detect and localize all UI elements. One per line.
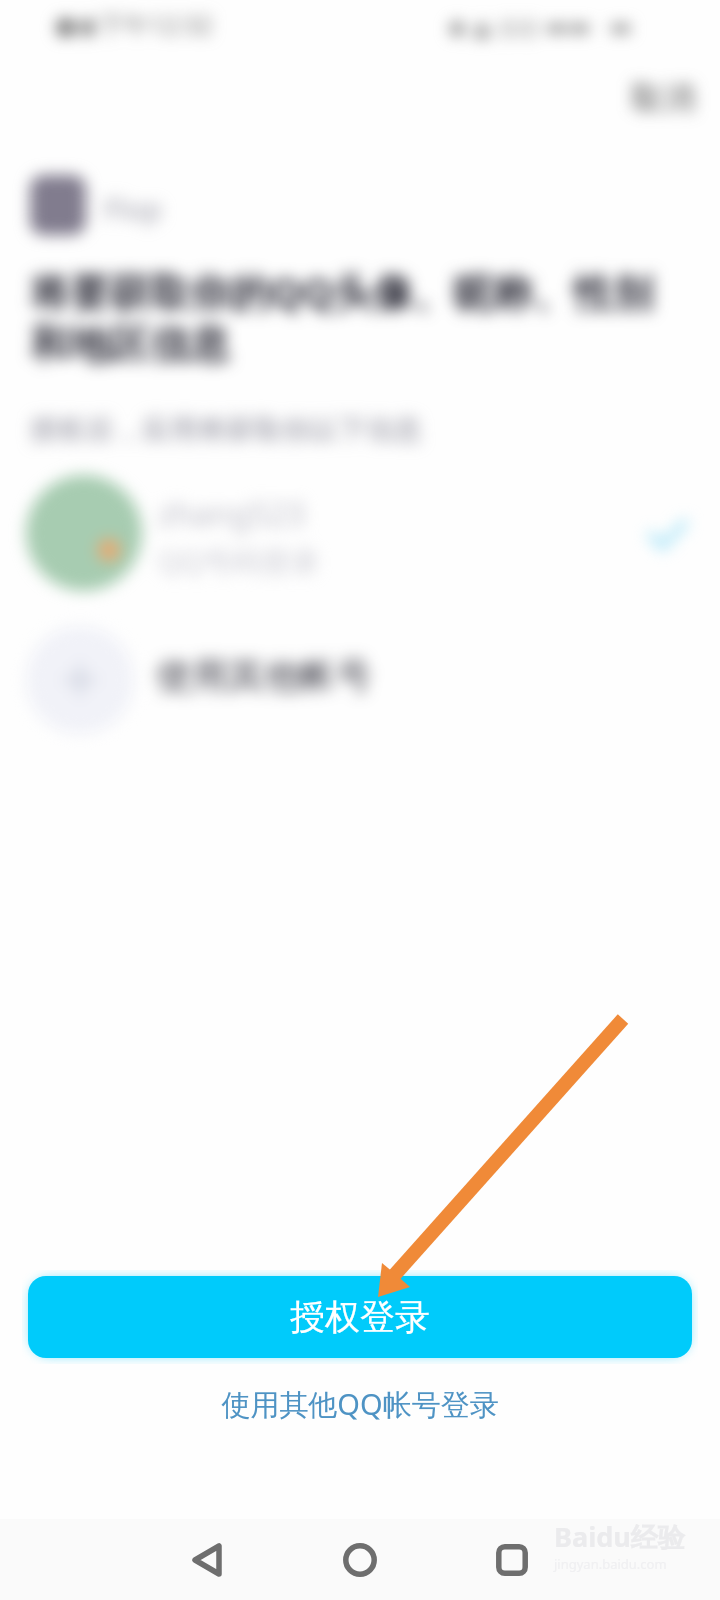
button[interactable]	[20, 468, 700, 598]
staticText: 取消	[631, 78, 695, 118]
button[interactable]: Back	[147, 1519, 267, 1600]
button[interactable]: 取消	[628, 75, 698, 121]
button[interactable]: Recents	[452, 1519, 572, 1600]
button[interactable]: 使用其他QQ帐号登录	[205, 1376, 515, 1432]
staticText: zhang523	[158, 492, 306, 536]
button[interactable]: 授权登录	[28, 1276, 692, 1358]
staticText: QQ号码登录	[158, 541, 320, 581]
staticText: Flop	[104, 189, 162, 228]
staticText: 授权登录	[290, 1295, 430, 1339]
button[interactable]: Home	[300, 1519, 420, 1600]
staticText: 使用其他帐号	[156, 653, 372, 698]
staticText: 使用其他QQ帐号登录	[221, 1384, 499, 1424]
staticText: jingyan.baidu.com	[554, 1555, 667, 1573]
staticText: ●◉下午12:32	[55, 7, 213, 41]
staticText: 将要获取你的QQ头像、昵称、性别 和地区信息	[30, 264, 654, 370]
staticText: ◆ ▲ ◎◎ ▬▬ ▬	[448, 9, 633, 42]
button[interactable]	[20, 620, 700, 740]
staticText: Baidu经验	[554, 1518, 685, 1555]
staticText: 授权后，应用将获取你以下信息	[30, 412, 422, 447]
